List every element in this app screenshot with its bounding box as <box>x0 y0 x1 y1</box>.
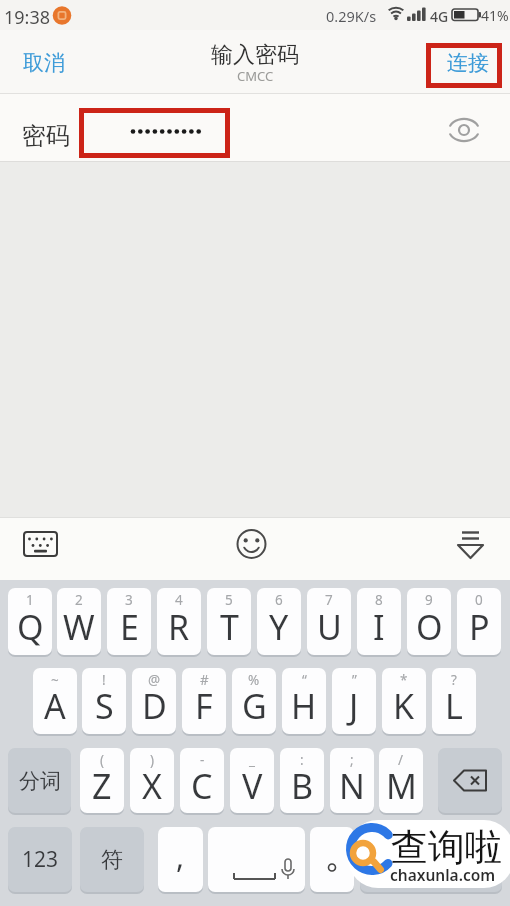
staticText: 输入密码 <box>211 41 299 68</box>
staticText: Z <box>92 763 112 809</box>
button[interactable]: # <box>182 668 226 734</box>
button[interactable]: 3 <box>107 588 151 655</box>
button[interactable] <box>14 522 66 564</box>
staticText: / <box>398 751 404 769</box>
staticText: ) <box>150 751 155 769</box>
staticText: E <box>120 604 139 650</box>
staticText: 查询啦 <box>391 824 502 869</box>
button[interactable] <box>310 827 354 892</box>
button[interactable]: / <box>379 748 423 813</box>
staticText: 9 <box>425 591 433 609</box>
staticText: P <box>469 604 490 650</box>
staticText: 19:38 <box>4 5 50 25</box>
button[interactable]: ? <box>432 668 476 734</box>
button[interactable]: ) <box>130 748 174 813</box>
staticText: F <box>195 683 213 729</box>
staticText: ( <box>100 751 105 769</box>
staticText: 5 <box>225 591 233 609</box>
staticText: M <box>386 763 417 809</box>
staticText: * <box>400 671 408 689</box>
button[interactable]: * <box>382 668 426 734</box>
staticText: 4 <box>175 591 183 609</box>
button[interactable]: - <box>180 748 224 813</box>
button[interactable]: ; <box>330 748 374 813</box>
staticText: CMCC <box>237 67 274 83</box>
button[interactable] <box>208 827 305 892</box>
button[interactable]: : <box>280 748 324 813</box>
staticText: Y <box>269 604 289 650</box>
staticText: “ <box>302 671 307 689</box>
staticText: N <box>339 763 365 809</box>
button[interactable]: _ <box>230 748 274 813</box>
button[interactable]: “ <box>282 668 326 734</box>
staticText: ~ <box>51 671 59 689</box>
button[interactable]: 符 <box>80 827 144 892</box>
staticText: 分词 <box>19 768 61 794</box>
staticText: O <box>416 604 443 650</box>
staticText: 4G <box>430 7 449 23</box>
staticText: # <box>200 671 209 689</box>
button[interactable]: 取消 <box>22 50 66 76</box>
staticText: 连接 <box>447 50 489 76</box>
staticText: T <box>220 604 239 650</box>
button[interactable]: ! <box>82 668 126 734</box>
staticText: 符 <box>101 846 123 874</box>
staticText: 6 <box>275 591 283 609</box>
staticText: J <box>349 683 359 729</box>
staticText: W <box>63 604 95 650</box>
button[interactable]: 连接 <box>446 50 490 76</box>
staticText: 2 <box>75 591 83 609</box>
staticText: 0.29K/s <box>326 6 377 24</box>
staticText: H <box>291 683 317 729</box>
button[interactable]: 0 <box>457 588 501 655</box>
button[interactable]: 123 <box>8 827 72 892</box>
button[interactable] <box>438 748 502 813</box>
staticText: X <box>142 763 162 809</box>
button[interactable]: % <box>232 668 276 734</box>
staticText: 41% <box>481 6 509 24</box>
button[interactable] <box>360 827 502 892</box>
staticText: : <box>300 751 304 769</box>
staticText: chaxunla.com <box>390 864 496 884</box>
staticText: C <box>191 763 213 809</box>
staticText: 123 <box>22 845 59 874</box>
staticText: V <box>242 763 263 809</box>
staticText: L <box>445 683 463 729</box>
staticText: B <box>291 763 314 809</box>
button[interactable]: @ <box>132 668 176 734</box>
button[interactable]: 7 <box>307 588 351 655</box>
button[interactable]: 5 <box>207 588 251 655</box>
button[interactable]: 分词 <box>8 748 71 813</box>
staticText: 1 <box>26 591 34 609</box>
staticText: D <box>142 683 167 729</box>
button[interactable] <box>448 522 494 564</box>
staticText: 密码 <box>22 121 70 148</box>
staticText: - <box>200 751 205 769</box>
button[interactable] <box>0 94 510 161</box>
staticText: 8 <box>375 591 383 609</box>
button[interactable] <box>444 110 484 150</box>
staticText: I <box>373 604 385 650</box>
staticText: K <box>393 683 415 729</box>
button[interactable]: 9 <box>407 588 451 655</box>
button[interactable]: ~ <box>33 668 77 734</box>
button[interactable] <box>230 522 274 564</box>
button[interactable]: ” <box>332 668 376 734</box>
staticText: ! <box>102 671 106 689</box>
staticText: R <box>168 604 190 650</box>
button[interactable]: 8 <box>357 588 401 655</box>
staticText: G <box>242 683 267 729</box>
staticText: 3 <box>125 591 133 609</box>
button[interactable]: 6 <box>257 588 301 655</box>
staticText: ? <box>451 671 457 689</box>
button[interactable]: 4 <box>157 588 201 655</box>
staticText: ” <box>352 671 357 689</box>
staticText: 7 <box>325 591 333 609</box>
staticText: Q <box>17 604 44 650</box>
button[interactable]: 1 <box>8 588 52 655</box>
staticText: 0 <box>475 591 483 609</box>
button[interactable]: 2 <box>57 588 101 655</box>
staticText: S <box>95 683 114 729</box>
button[interactable]: , <box>158 827 203 892</box>
button[interactable]: ( <box>80 748 124 813</box>
